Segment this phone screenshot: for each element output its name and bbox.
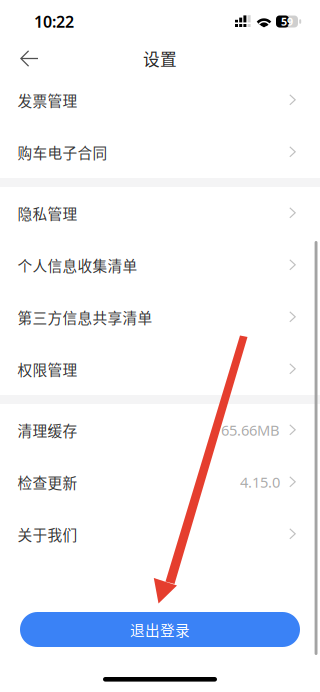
staticText: 隐私管理 bbox=[17, 202, 77, 224]
staticText: 4.15.0 bbox=[240, 472, 280, 492]
button[interactable]: Back bbox=[0, 43, 53, 74]
staticText: 购车电子合同 bbox=[17, 141, 107, 163]
staticText: 权限管理 bbox=[17, 358, 77, 380]
staticText: 清理缓存 bbox=[17, 419, 77, 441]
staticText: 第三方信息共享清单 bbox=[17, 306, 152, 328]
staticText: 关于我们 bbox=[17, 523, 77, 545]
staticText: 退出登录 bbox=[130, 619, 190, 640]
button[interactable]: 检查更新 bbox=[0, 456, 320, 508]
staticText: 59 bbox=[281, 14, 293, 29]
button[interactable]: 关于我们 bbox=[0, 508, 320, 560]
button[interactable]: 隐私管理 bbox=[0, 187, 320, 239]
staticText: 设置 bbox=[143, 46, 177, 70]
button[interactable]: 发票管理 bbox=[0, 74, 320, 126]
staticText: 检查更新 bbox=[17, 471, 77, 493]
button[interactable]: 个人信息收集清单 bbox=[0, 239, 320, 291]
staticText: 发票管理 bbox=[17, 89, 77, 111]
button[interactable]: 权限管理 bbox=[0, 343, 320, 395]
staticText: 65.66MB bbox=[221, 420, 280, 440]
button[interactable]: 退出登录 bbox=[20, 612, 300, 647]
staticText: 10:22 bbox=[34, 11, 74, 32]
button[interactable]: 第三方信息共享清单 bbox=[0, 291, 320, 343]
button[interactable]: 购车电子合同 bbox=[0, 126, 320, 178]
button[interactable]: 清理缓存 bbox=[0, 404, 320, 456]
staticText: 个人信息收集清单 bbox=[17, 254, 137, 276]
